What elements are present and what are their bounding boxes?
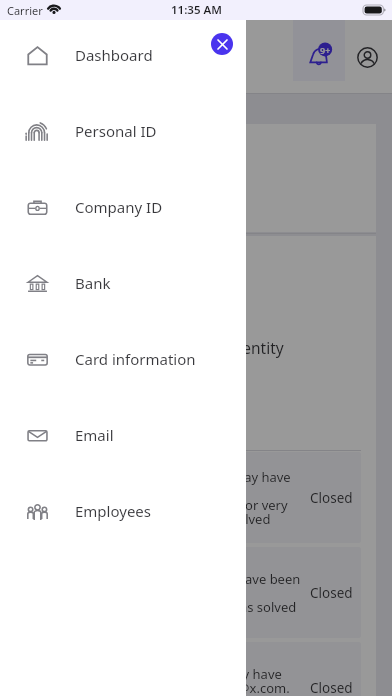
staticText: Carrier bbox=[7, 3, 43, 18]
button[interactable]: Your details have been changed now, but … bbox=[14, 547, 361, 638]
staticText: Personal ID bbox=[75, 121, 157, 141]
staticText: Verify your identity bbox=[146, 337, 284, 358]
staticText: Email bbox=[75, 425, 114, 445]
staticText: Someone may have used to user@x.com. Con… bbox=[162, 665, 290, 696]
button[interactable]: Company ID bbox=[0, 169, 246, 245]
staticText: Dashboard bbox=[75, 45, 153, 65]
button[interactable]: Something may have happened for your acc… bbox=[14, 452, 361, 543]
button[interactable]: Notifications bbox=[293, 20, 345, 81]
button[interactable]: Personal ID bbox=[0, 93, 246, 169]
staticText: Card information bbox=[75, 349, 196, 369]
button[interactable]: Card information bbox=[0, 321, 246, 397]
staticText: Something may have happened for your acc… bbox=[162, 468, 291, 528]
staticText: Company ID bbox=[75, 197, 163, 217]
staticText: Your details have been changed now, but … bbox=[162, 570, 301, 616]
button[interactable]: Email bbox=[0, 397, 246, 473]
staticText: Bank bbox=[75, 273, 111, 293]
button[interactable] bbox=[16, 124, 376, 232]
button[interactable]: Account bbox=[353, 43, 382, 72]
button[interactable]: Dashboard bbox=[0, 17, 246, 93]
button[interactable]: Someone may have used to user@x.com. Con… bbox=[14, 642, 361, 696]
staticText: Employees bbox=[75, 501, 151, 521]
button[interactable]: Bank bbox=[0, 245, 246, 321]
staticText: Closed bbox=[310, 584, 353, 602]
staticText: 9+ bbox=[320, 44, 331, 56]
button[interactable]: Close menu bbox=[211, 33, 233, 55]
staticText: Closed bbox=[310, 489, 353, 507]
staticText: Closed bbox=[310, 679, 353, 696]
button[interactable]: Employees bbox=[0, 473, 246, 549]
staticText: 11:35 AM bbox=[171, 2, 222, 18]
